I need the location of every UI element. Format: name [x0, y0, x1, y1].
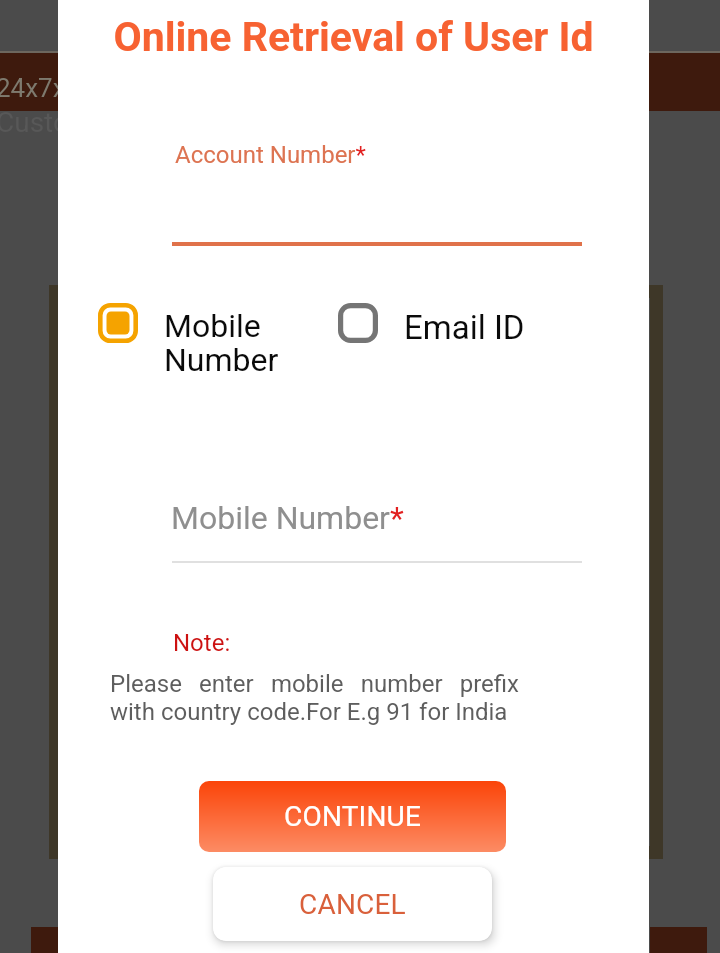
staticText: CANCEL	[299, 888, 406, 921]
staticText: Online Retrieval of User Id	[58, 13, 649, 61]
staticText: CONTINUE	[284, 800, 422, 833]
button[interactable]: Email ID, not selected	[338, 300, 527, 340]
staticText: Note:	[173, 629, 231, 657]
button[interactable]: CANCEL	[213, 867, 492, 941]
staticText: Customer Care	[0, 106, 183, 139]
staticText: 24x7x365 Assistance	[0, 73, 244, 103]
staticText: Email ID	[404, 308, 525, 347]
button[interactable]: Mobile Number, selected	[98, 300, 280, 372]
staticText: Please enter mobile number prefix with c…	[110, 670, 519, 726]
staticText: Account Number*	[175, 141, 366, 169]
button[interactable]: Account Number*	[172, 135, 582, 247]
button[interactable]: CONTINUE	[199, 781, 506, 852]
staticText: Mobile Number*	[171, 499, 404, 537]
button[interactable]: Mobile Number*	[171, 494, 582, 563]
staticText: Mobile Number	[164, 307, 279, 379]
